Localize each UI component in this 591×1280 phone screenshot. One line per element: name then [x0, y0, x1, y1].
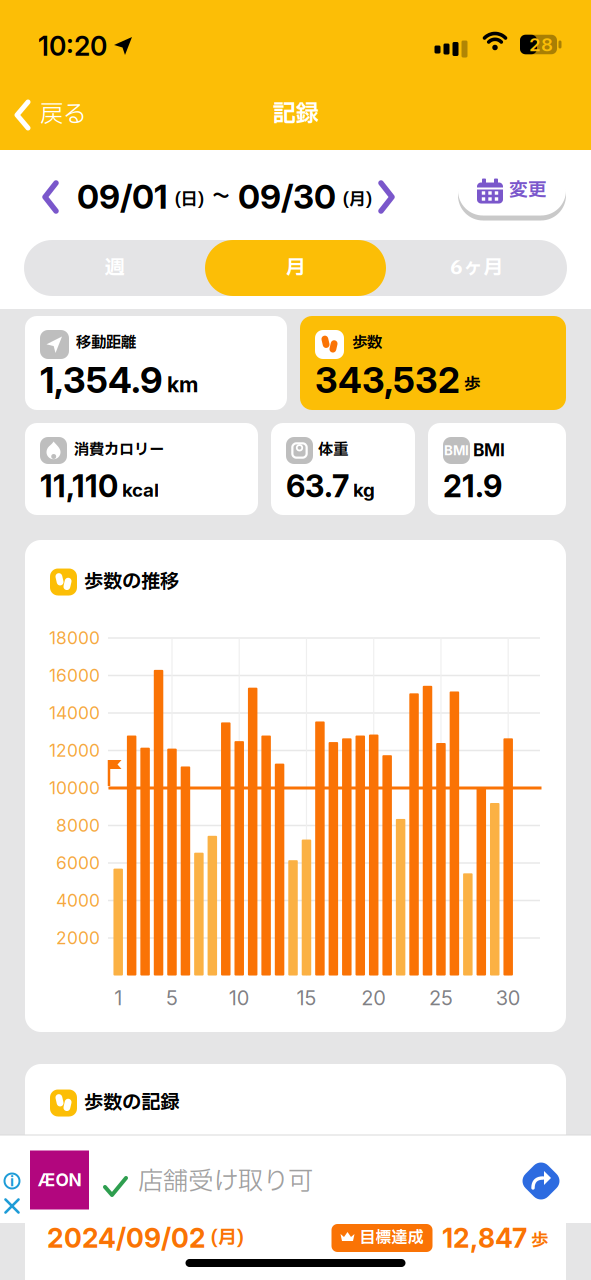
staticText: 体重 [318, 438, 348, 461]
staticText: 歩数の推移 [84, 567, 179, 596]
staticText: 週 [104, 253, 124, 283]
staticText: 10000 [49, 778, 100, 798]
staticText: 1 [114, 986, 122, 1010]
staticText: 09/01 [77, 177, 168, 216]
staticText: (月) [343, 187, 372, 212]
staticText: 09/30 [238, 177, 336, 216]
staticText: 15 [296, 986, 316, 1010]
staticText: 戻る [40, 97, 86, 132]
staticText: 目標達成 [359, 1226, 423, 1250]
staticText: (日) [175, 187, 204, 212]
button[interactable]: 消費カロリー [25, 423, 258, 515]
staticText: 歩 [531, 1228, 548, 1254]
staticText: 消費カロリー [74, 438, 164, 461]
staticText: (月) [211, 1224, 244, 1252]
staticText: 16000 [49, 665, 100, 686]
staticText: 20 [361, 986, 386, 1010]
staticText: 28 [529, 33, 553, 55]
staticText: 記録 [272, 96, 318, 131]
staticText: 10 [229, 986, 250, 1010]
button[interactable]: 広告情報 [4, 1173, 20, 1189]
button[interactable]: 週 [24, 240, 205, 296]
staticText: 12000 [49, 740, 100, 761]
staticText: 歩数の記録 [84, 1088, 179, 1117]
staticText: ÆON [37, 1170, 81, 1190]
staticText: 6000 [56, 853, 100, 873]
staticText: 11,110 [40, 468, 118, 504]
button[interactable]: 6ヶ月 [386, 240, 567, 296]
staticText: i [10, 1172, 14, 1190]
staticText: km [167, 372, 198, 397]
staticText: 10:20 [38, 30, 107, 62]
button[interactable]: BMI [428, 423, 566, 515]
button[interactable]: AEON 広告 [30, 1150, 89, 1209]
staticText: BMI [444, 443, 469, 458]
staticText: 店舗受け取り可 [138, 1163, 313, 1201]
staticText: 1,354.9 [40, 359, 163, 401]
staticText: BMI [473, 440, 505, 460]
button[interactable]: 前の期間 [42, 181, 60, 213]
staticText: 8000 [56, 815, 100, 836]
staticText: 移動距離 [76, 331, 136, 354]
button[interactable]: 歩数 [300, 316, 566, 410]
button[interactable]: 2024/09/02 [25, 1210, 566, 1266]
staticText: 343,532 [315, 359, 460, 401]
button[interactable]: 次の期間 [377, 181, 395, 213]
staticText: 25 [429, 986, 453, 1010]
button[interactable]: 月 [205, 240, 386, 296]
button[interactable]: 広告を閉じる [4, 1198, 19, 1213]
staticText: 4000 [56, 890, 100, 911]
staticText: 21.9 [443, 468, 502, 504]
button[interactable]: 移動距離 [25, 316, 287, 410]
staticText: 2000 [56, 928, 100, 948]
staticText: kg [353, 479, 375, 501]
staticText: 月 [285, 253, 305, 283]
staticText: 18000 [49, 628, 100, 648]
staticText: 変更 [509, 176, 547, 204]
staticText: 6ヶ月 [450, 253, 503, 283]
button[interactable]: 体重 [271, 423, 415, 515]
staticText: 12,847 [442, 1222, 527, 1254]
staticText: 歩 [464, 372, 481, 397]
staticText: kcal [122, 479, 159, 501]
button[interactable]: 広告リンク [518, 1158, 564, 1204]
staticText: 30 [496, 986, 521, 1010]
staticText: ～ [211, 181, 231, 211]
button[interactable]: 変更 [458, 165, 566, 222]
staticText: 5 [166, 986, 178, 1010]
staticText: 2024/09/02 [47, 1222, 206, 1254]
staticText: 63.7 [286, 468, 349, 504]
staticText: 歩数 [352, 331, 382, 354]
button[interactable]: 戻る [14, 93, 124, 137]
staticText: 14000 [49, 703, 100, 723]
